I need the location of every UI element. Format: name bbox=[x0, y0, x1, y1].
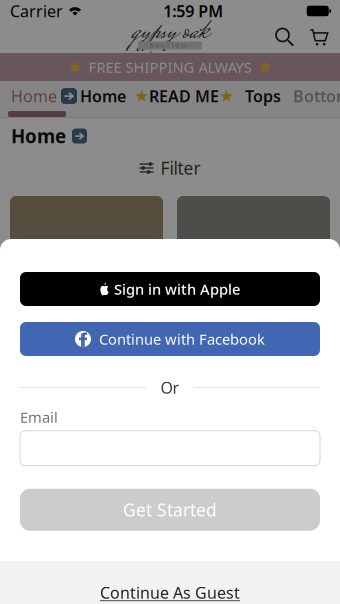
staticText: Filter bbox=[160, 156, 200, 179]
staticText: gypsy oak bbox=[131, 10, 208, 57]
button[interactable]: Cart bbox=[306, 24, 332, 50]
staticText: BOUTIQUE bbox=[150, 42, 190, 49]
button[interactable]: Get Started bbox=[20, 489, 320, 531]
staticText: 1:59 PM bbox=[163, 0, 223, 22]
staticText: Sign in with Apple bbox=[114, 279, 240, 299]
staticText: Or bbox=[160, 377, 179, 398]
button[interactable]: Home bbox=[72, 81, 134, 111]
button[interactable]: Filter bbox=[0, 154, 340, 182]
staticText: Continue As Guest bbox=[100, 582, 240, 603]
staticText: Get Started bbox=[123, 498, 217, 521]
staticText: Continue with Facebook bbox=[99, 329, 265, 349]
button[interactable]: Continue As Guest bbox=[0, 561, 340, 604]
button[interactable]: Bottoms bbox=[285, 81, 340, 111]
button[interactable]: Home bbox=[3, 81, 85, 111]
staticText: Tops bbox=[245, 85, 281, 107]
button[interactable]: Continue with Facebook bbox=[20, 322, 320, 356]
staticText: Home bbox=[11, 85, 57, 107]
button[interactable]: Sign in with Apple bbox=[20, 272, 320, 306]
staticText: FREE SHIPPING ALWAYS bbox=[88, 57, 251, 77]
button[interactable]: Tops bbox=[237, 81, 289, 111]
staticText: Email bbox=[20, 407, 58, 427]
staticText: READ ME bbox=[149, 85, 219, 107]
staticText: Home bbox=[80, 85, 126, 107]
button[interactable]: READ ME bbox=[128, 81, 240, 111]
button[interactable]: Search bbox=[272, 24, 298, 50]
staticText: Bottoms bbox=[293, 85, 340, 107]
staticText: Home bbox=[11, 124, 66, 148]
staticText: Carrier bbox=[10, 0, 63, 22]
